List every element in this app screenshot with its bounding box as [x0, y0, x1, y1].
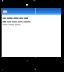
button[interactable]: [2, 15, 61, 57]
button[interactable]: [2, 8, 61, 15]
